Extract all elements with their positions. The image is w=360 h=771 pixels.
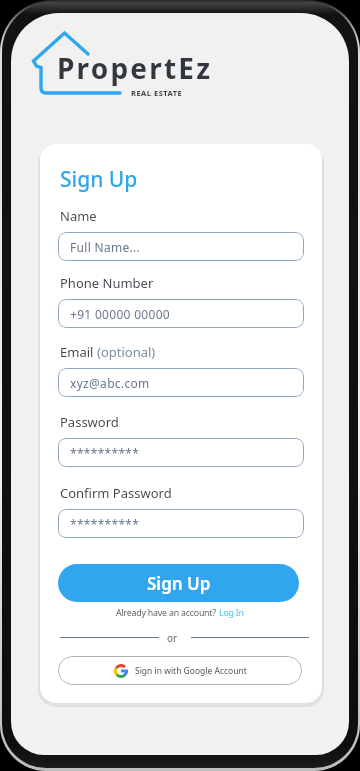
staticText: Full Name...	[70, 239, 141, 255]
staticText: Name	[60, 207, 97, 225]
staticText: PropertEz	[57, 49, 213, 87]
staticText: Confirm Password	[60, 484, 172, 502]
button[interactable]: **********	[58, 509, 304, 538]
staticText: +91 00000 00000	[70, 306, 170, 322]
staticText: Email	[60, 343, 97, 361]
staticText: Sign Up	[60, 165, 138, 194]
staticText: REAL ESTATE	[131, 88, 183, 98]
button[interactable]: xyz@abc.com	[58, 368, 304, 397]
button[interactable]: Log In	[219, 607, 244, 619]
staticText: Sign Up	[147, 572, 211, 595]
button[interactable]: +91 00000 00000	[58, 299, 304, 328]
button[interactable]: Sign Up	[58, 564, 299, 602]
staticText: xyz@abc.com	[70, 375, 150, 391]
staticText: Already have an account?	[116, 607, 219, 619]
staticText: **********	[70, 516, 140, 532]
staticText: Password	[60, 413, 119, 431]
staticText: **********	[70, 445, 140, 461]
staticText: (optional)	[97, 343, 156, 361]
button[interactable]: Full Name...	[58, 232, 304, 261]
staticText: Sign in with Google Account	[135, 665, 247, 677]
button[interactable]: **********	[58, 438, 304, 467]
staticText: or	[167, 631, 178, 645]
staticText: Phone Number	[60, 274, 154, 292]
button[interactable]: Sign in with Google Account	[58, 656, 302, 685]
